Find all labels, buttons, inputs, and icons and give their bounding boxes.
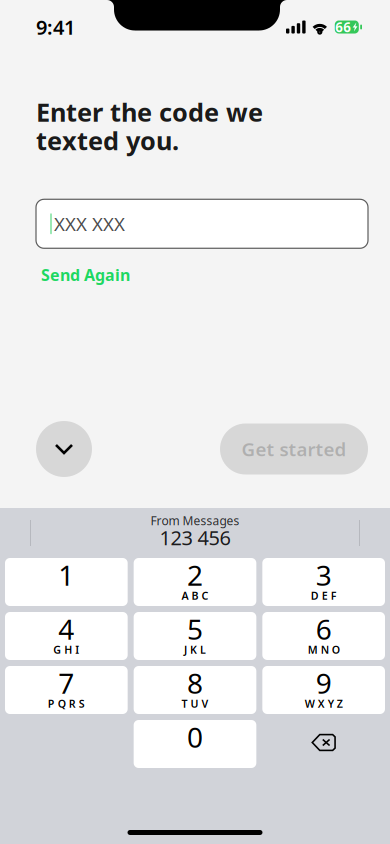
staticText: Get started [241, 437, 346, 461]
staticText: 7 [58, 664, 74, 702]
staticText: Send Again [41, 264, 130, 285]
button[interactable]: Send Again [36, 259, 140, 290]
button[interactable]: 8 [134, 666, 256, 714]
staticText: texted you. [36, 124, 179, 157]
staticText: 3 [316, 556, 332, 594]
button[interactable]: 3 [262, 558, 385, 606]
staticText: 9 [316, 664, 332, 702]
staticText: T U V [181, 696, 208, 711]
staticText: 123 456 [159, 524, 230, 551]
button[interactable]: 4 [5, 612, 128, 660]
staticText: G H I [53, 642, 79, 657]
staticText: 1 [58, 556, 74, 594]
button[interactable]: 1 [5, 558, 128, 606]
staticText: 0 [187, 718, 203, 756]
staticText: 5 [187, 610, 203, 648]
button[interactable]: Delete [262, 720, 385, 768]
staticText: 2 [187, 556, 203, 594]
staticText: 8 [187, 664, 203, 702]
staticText: 4 [58, 610, 74, 648]
staticText: M N O [308, 642, 340, 657]
staticText: XXX XXX [54, 211, 125, 236]
button[interactable]: 9 [262, 666, 385, 714]
button[interactable]: 7 [5, 666, 128, 714]
staticText: 6 [316, 610, 332, 648]
staticText: W X Y Z [305, 696, 343, 711]
button[interactable]: 2 [134, 558, 256, 606]
button[interactable]: 6 [262, 612, 385, 660]
staticText: A B C [181, 588, 208, 603]
staticText: 66 [335, 18, 351, 36]
staticText: J K L [184, 642, 206, 657]
staticText: 9:41 [36, 14, 75, 40]
staticText: P Q R S [48, 696, 85, 711]
staticText: From Messages [150, 512, 239, 528]
button[interactable]: Get started [220, 423, 368, 474]
staticText: D E F [311, 588, 337, 603]
button[interactable]: 0 [134, 720, 256, 768]
staticText: Enter the code we [36, 95, 263, 129]
button[interactable]: 5 [134, 612, 256, 660]
button[interactable]: Hide keyboard [36, 421, 92, 477]
